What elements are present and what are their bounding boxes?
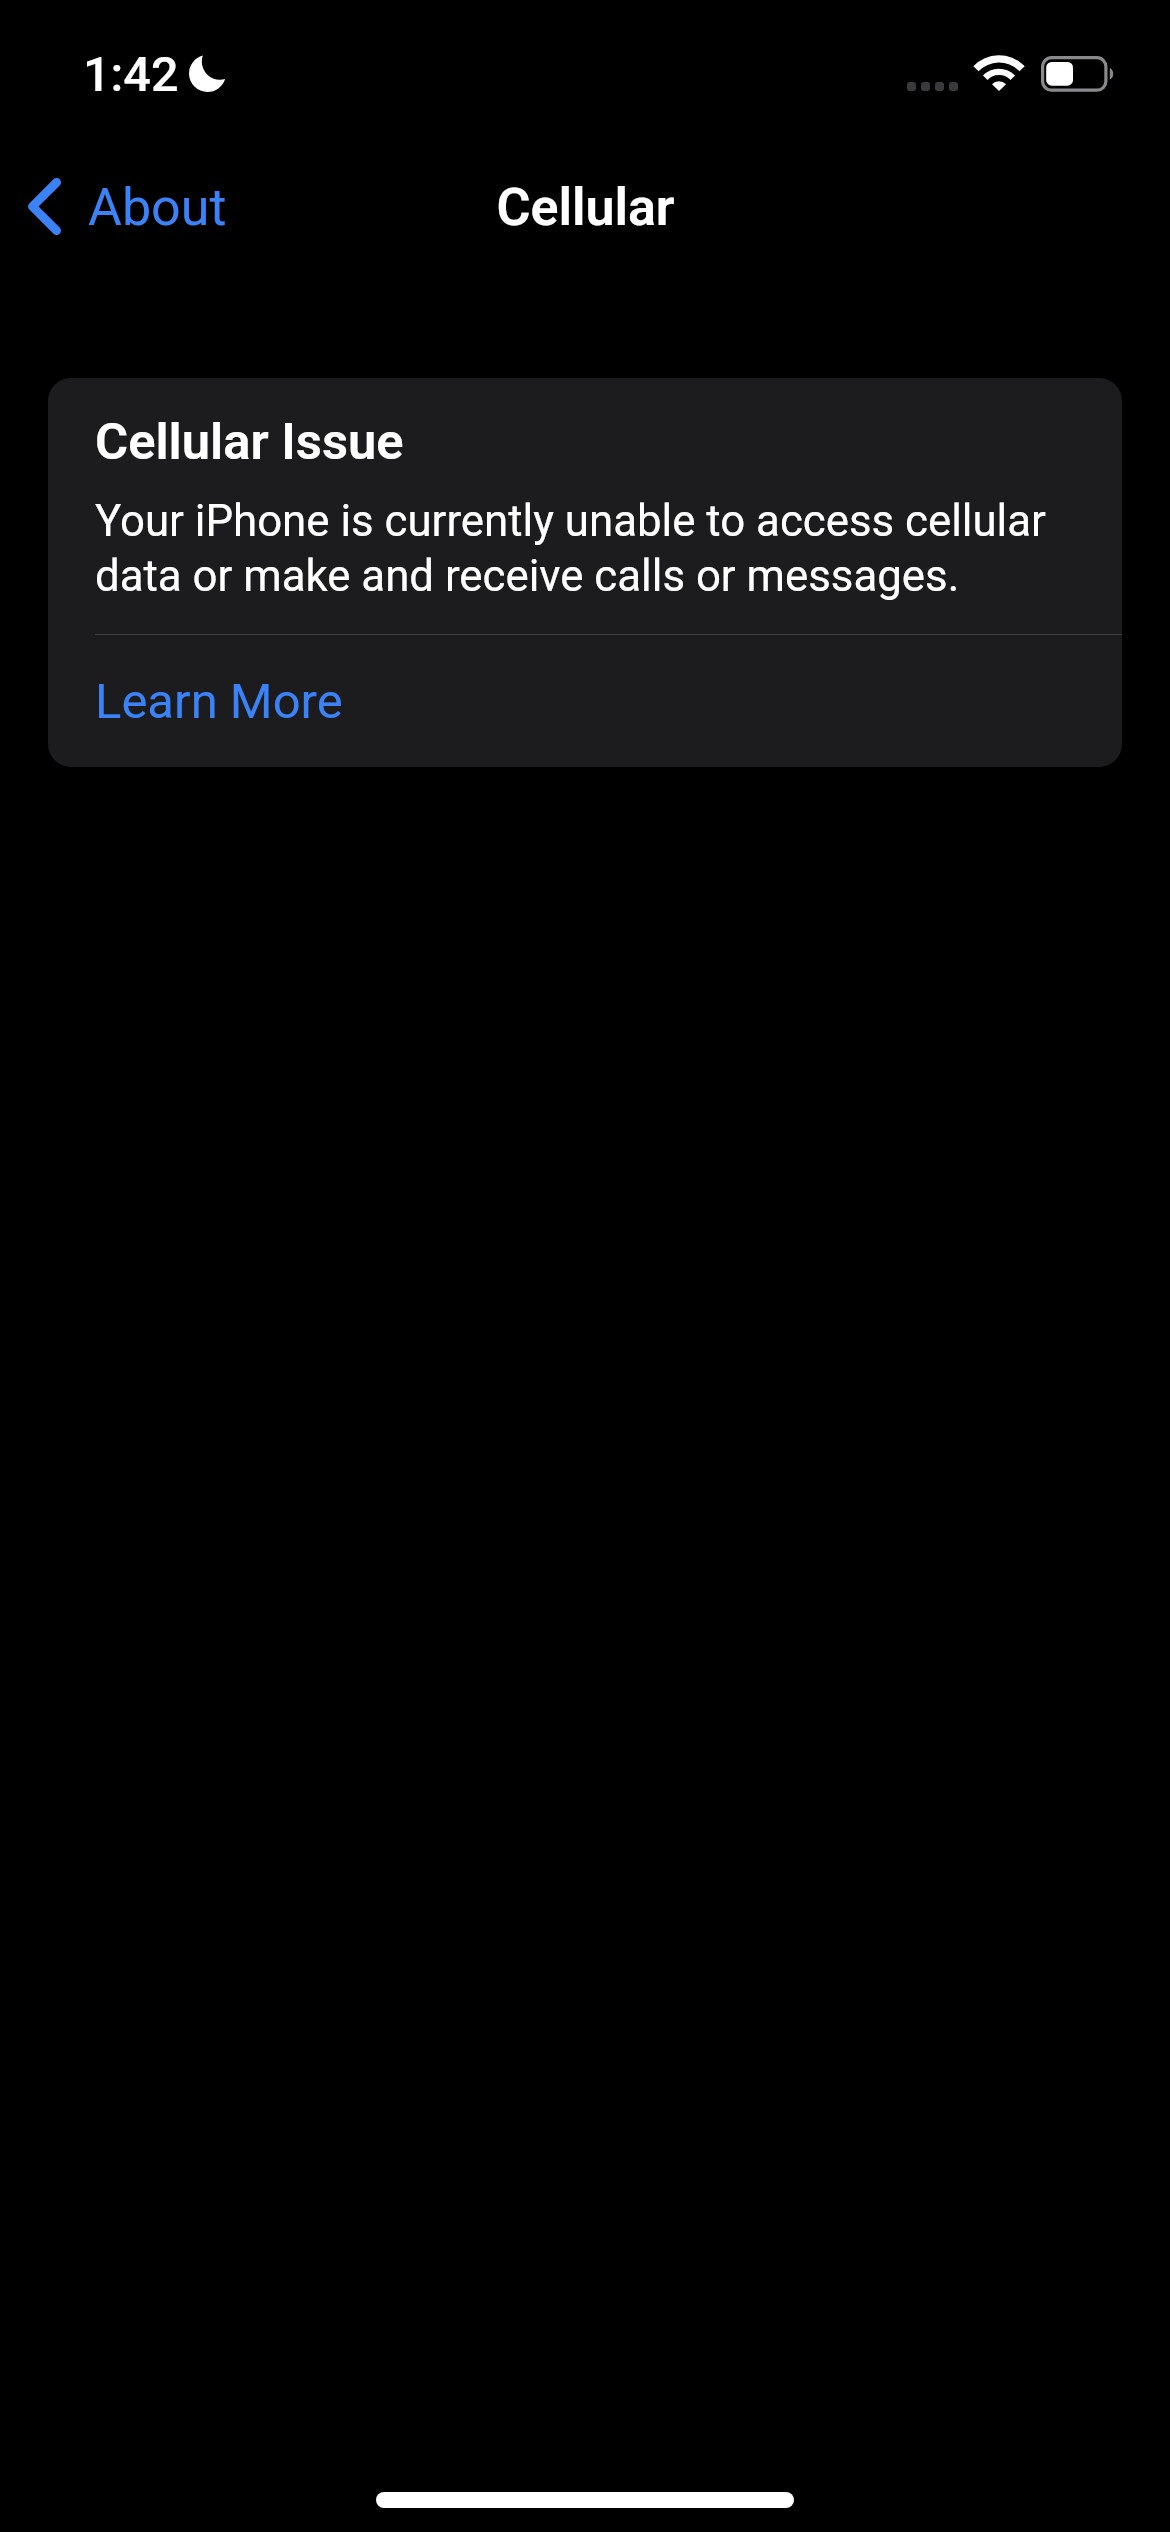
other: Wi-Fi xyxy=(973,53,1025,93)
other: Battery xyxy=(1039,55,1119,95)
other: No cellular signal xyxy=(907,82,958,92)
button[interactable]: Learn More xyxy=(48,635,1122,767)
staticText: Your iPhone is currently unable to acces… xyxy=(95,495,1096,601)
staticText: Learn More xyxy=(95,673,343,730)
button[interactable]: Back to About xyxy=(12,160,242,254)
staticText: Cellular xyxy=(496,177,675,238)
staticText: About xyxy=(88,177,227,238)
other: Do Not Disturb xyxy=(189,55,226,92)
staticText: 1:42 xyxy=(83,46,179,103)
staticText: Cellular Issue xyxy=(95,412,404,471)
